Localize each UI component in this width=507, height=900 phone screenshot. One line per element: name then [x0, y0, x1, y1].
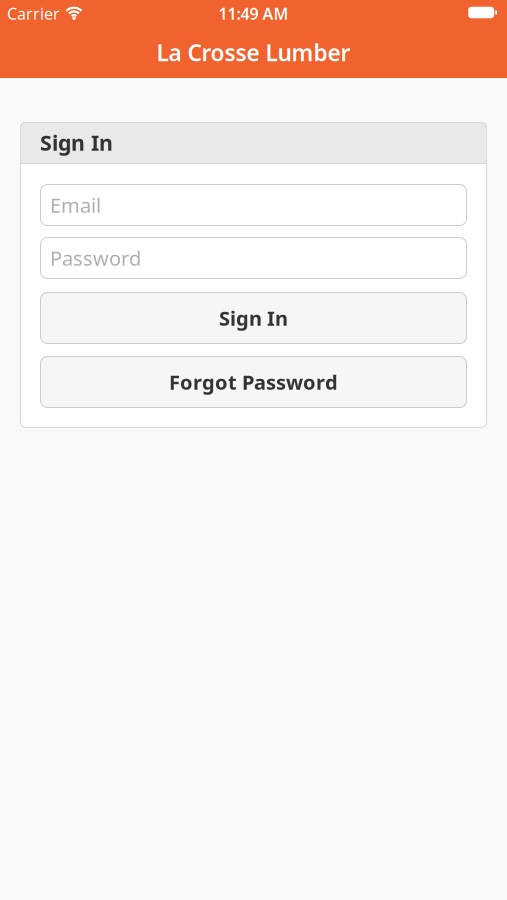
staticText: Carrier: [7, 3, 60, 24]
staticText: Sign In: [219, 305, 288, 331]
staticText: Sign In: [40, 128, 113, 157]
button[interactable]: Forgot Password: [40, 356, 467, 408]
staticText: Email: [50, 192, 101, 218]
button[interactable]: Sign In: [40, 292, 467, 344]
staticText: Password: [50, 245, 141, 271]
staticText: 11:49 AM: [218, 3, 288, 24]
staticText: Forgot Password: [169, 369, 338, 395]
staticText: La Crosse Lumber: [156, 37, 350, 67]
button[interactable]: Email: [40, 184, 467, 226]
button[interactable]: Password: [40, 237, 467, 279]
